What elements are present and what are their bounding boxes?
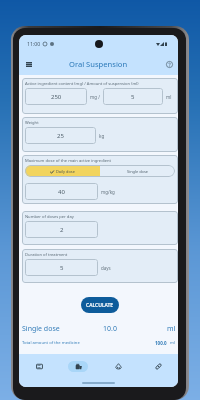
- staticText: mg /: [90, 94, 100, 100]
- button[interactable]: 5: [25, 259, 98, 276]
- button[interactable]: CALCULATE: [81, 297, 119, 313]
- staticText: 100.0: [155, 340, 167, 346]
- staticText: 25: [57, 132, 64, 140]
- staticText: 5: [131, 93, 135, 101]
- button[interactable]: Suspension: [58, 358, 98, 375]
- staticText: kg: [99, 133, 105, 139]
- staticText: Duration of treatment: [25, 252, 68, 258]
- staticText: mg/kg: [101, 189, 115, 195]
- button[interactable]: Help: [163, 58, 175, 70]
- button[interactable]: Menu: [23, 58, 35, 70]
- staticText: 11:00: [27, 40, 41, 47]
- staticText: 10.0: [103, 324, 117, 334]
- staticText: 5: [60, 264, 64, 272]
- staticText: ml: [166, 94, 172, 100]
- button[interactable]: 250: [25, 88, 87, 105]
- button[interactable]: Single dose: [100, 165, 175, 177]
- staticText: Total amount of the medicine: [22, 340, 80, 346]
- staticText: Weight: [25, 120, 39, 126]
- button[interactable]: Daily dose: [25, 165, 100, 177]
- button[interactable]: 40: [25, 183, 98, 200]
- staticText: Maximum dose of the main active ingredie…: [25, 158, 112, 164]
- staticText: Daily dose: [56, 169, 75, 174]
- staticText: Active ingredient content (mg) / Amount …: [25, 81, 139, 87]
- staticText: ml: [170, 340, 175, 346]
- button[interactable]: Tablets: [19, 358, 58, 375]
- staticText: Oral Suspension: [69, 59, 128, 69]
- button[interactable]: 5: [103, 88, 163, 105]
- staticText: days: [101, 265, 111, 271]
- button[interactable]: 2: [25, 221, 98, 238]
- staticText: 40: [58, 188, 65, 196]
- staticText: ml: [167, 324, 176, 334]
- staticText: Single dose: [22, 324, 60, 334]
- staticText: CALCULATE: [86, 302, 114, 309]
- staticText: Single dose: [127, 169, 148, 174]
- button[interactable]: Drops: [98, 358, 138, 375]
- button[interactable]: 25: [25, 127, 96, 144]
- staticText: Number of doses per day: [25, 214, 74, 220]
- staticText: 2: [60, 226, 64, 234]
- button[interactable]: Capsules: [138, 358, 178, 375]
- staticText: 250: [51, 93, 62, 101]
